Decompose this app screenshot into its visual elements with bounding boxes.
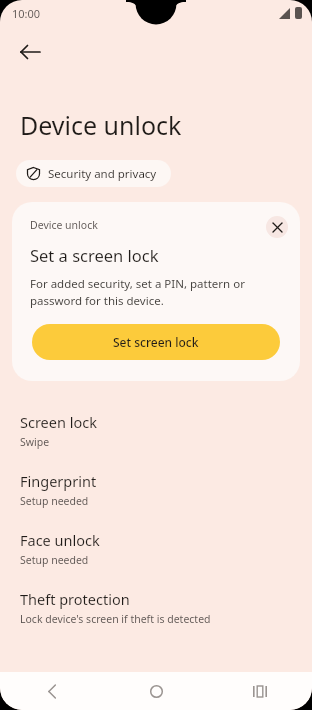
button[interactable]: Set screen lock — [32, 324, 280, 360]
staticText: Device unlock — [20, 108, 182, 142]
staticText: Swipe — [20, 435, 50, 449]
button[interactable]: Recent apps — [208, 672, 312, 710]
button[interactable]: Dismiss — [266, 216, 288, 238]
staticText: Fingerprint — [20, 471, 97, 491]
button[interactable]: Back — [8, 30, 52, 74]
staticText: Theft protection — [20, 589, 130, 609]
staticText: 10:00 — [12, 6, 41, 21]
staticText: Setup needed — [20, 553, 89, 567]
button[interactable]: Fingerprint — [0, 462, 312, 521]
button[interactable]: Back — [0, 672, 104, 710]
button[interactable]: Screen lock — [0, 403, 312, 462]
staticText: Lock device's screen if theft is detecte… — [20, 612, 211, 626]
button[interactable]: Security and privacy — [16, 160, 171, 187]
staticText: Screen lock — [20, 412, 97, 432]
staticText: Setup needed — [20, 494, 89, 508]
staticText: Set screen lock — [113, 334, 199, 350]
staticText: Face unlock — [20, 530, 100, 550]
staticText: For added security, set a PIN, pattern o… — [30, 276, 282, 308]
staticText: Set a screen lock — [30, 244, 159, 266]
button[interactable]: Home — [104, 672, 208, 710]
staticText: Security and privacy — [48, 166, 157, 182]
staticText: Device unlock — [30, 218, 98, 232]
button[interactable]: Face unlock — [0, 521, 312, 580]
button[interactable]: Theft protection — [0, 580, 312, 639]
